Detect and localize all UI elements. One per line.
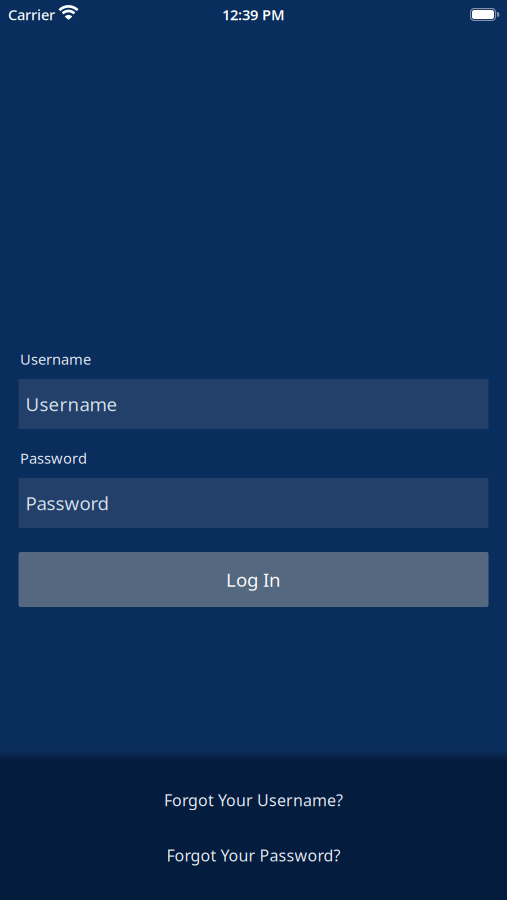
button[interactable]: Log In — [18, 552, 488, 607]
button[interactable]: Forgot Your Username? — [164, 789, 343, 811]
button[interactable]: Password — [18, 478, 488, 528]
staticText: Username — [25, 392, 117, 416]
staticText: Password — [20, 448, 87, 468]
staticText: Password — [25, 491, 108, 515]
button[interactable]: Forgot Your Password? — [166, 845, 340, 866]
button[interactable]: Username — [18, 379, 488, 429]
staticText: 12:39 PM — [222, 5, 285, 24]
staticText: Forgot Your Username? — [164, 789, 343, 811]
staticText: Carrier — [8, 5, 55, 24]
staticText: Username — [20, 349, 91, 369]
staticText: Log In — [226, 567, 281, 592]
staticText: Forgot Your Password? — [166, 845, 340, 866]
